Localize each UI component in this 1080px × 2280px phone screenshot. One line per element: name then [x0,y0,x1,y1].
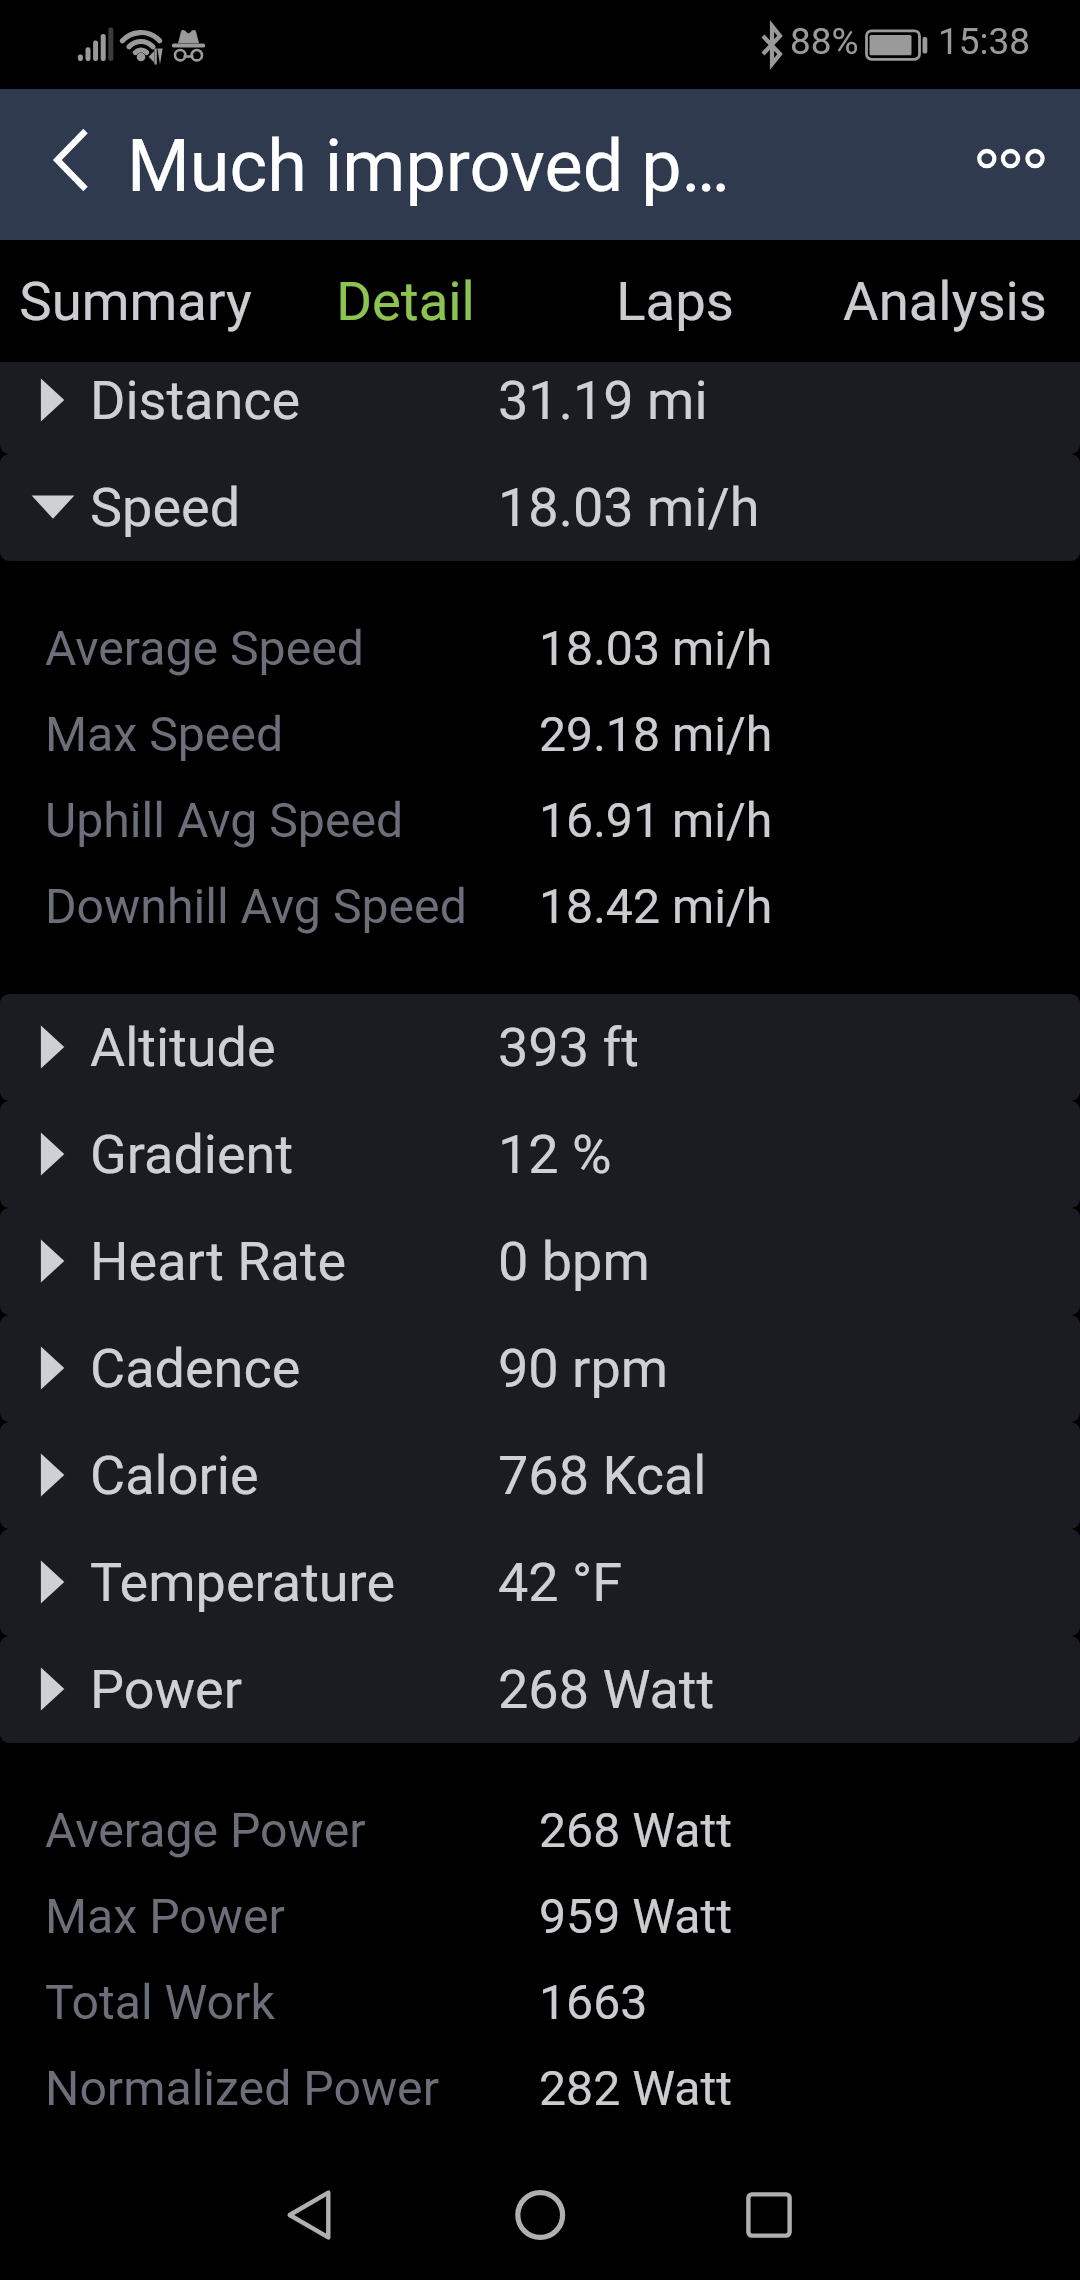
staticText: 18.42 mi/h [539,878,773,934]
staticText: 31.19 mi [498,369,708,432]
staticText: Normalized Power [45,2060,439,2116]
staticText: 959 Watt [539,1888,732,1944]
button[interactable]: Speed [0,454,1080,561]
staticText: Temperature [90,1551,396,1614]
staticText: 90 rpm [498,1337,669,1400]
staticText: 768 Kcal [498,1444,707,1507]
button[interactable]: Back [249,2155,369,2275]
staticText: 42 °F [498,1551,623,1614]
staticText: Uphill Avg Speed [45,792,404,848]
button[interactable]: Analysis [810,240,1080,362]
staticText: 18.03 mi/h [498,476,760,539]
button[interactable]: Distance [0,362,1080,454]
staticText: Max Power [45,1888,285,1944]
staticText: Much improved p… [127,124,730,208]
staticText: Laps [616,269,734,333]
button[interactable]: Laps [540,240,810,362]
staticText: Total Work [45,1974,275,2030]
button[interactable]: Temperature [0,1529,1080,1636]
staticText: 88% [790,20,859,63]
staticText: Heart Rate [90,1230,347,1293]
staticText: 29.18 mi/h [539,706,773,762]
button[interactable]: More options [960,89,1080,240]
button[interactable]: Summary [0,240,270,362]
staticText: Speed [90,476,241,539]
button[interactable]: Heart Rate [0,1208,1080,1315]
staticText: Detail [336,269,475,333]
staticText: Distance [90,369,301,432]
staticText: Cadence [90,1337,301,1400]
staticText: Downhill Avg Speed [45,878,467,934]
staticText: Average Speed [45,620,364,676]
staticText: 0 bpm [498,1230,650,1293]
button[interactable]: Cadence [0,1315,1080,1422]
button[interactable]: Navigate up [0,89,120,240]
staticText: Altitude [90,1016,276,1079]
button[interactable]: Altitude [0,994,1080,1101]
staticText: 268 Watt [498,1658,715,1721]
button[interactable]: Home [480,2155,600,2275]
staticText: Average Power [45,1802,366,1858]
button[interactable]: Detail [270,240,540,362]
button[interactable]: Recent apps [709,2155,829,2275]
staticText: 393 ft [498,1016,639,1079]
staticText: 15:38 [938,20,1031,63]
staticText: Gradient [90,1123,294,1186]
staticText: 282 Watt [539,2060,732,2116]
staticText: Analysis [843,269,1047,333]
staticText: 268 Watt [539,1802,732,1858]
staticText: Power [90,1658,243,1721]
staticText: 18.03 mi/h [539,620,773,676]
staticText: Calorie [90,1444,259,1507]
button[interactable]: Calorie [0,1422,1080,1529]
button[interactable]: Power [0,1636,1080,1743]
button[interactable]: Gradient [0,1101,1080,1208]
staticText: 1663 [539,1974,648,2030]
staticText: Summary [19,269,252,333]
staticText: Max Speed [45,706,284,762]
staticText: 12 % [498,1123,612,1186]
staticText: 16.91 mi/h [539,792,773,848]
